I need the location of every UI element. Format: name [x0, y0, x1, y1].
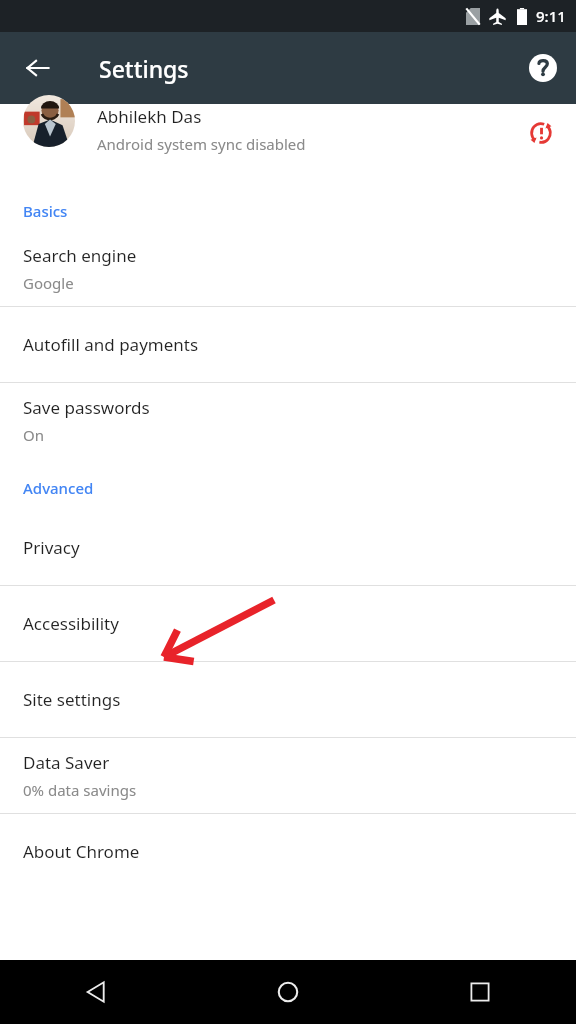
button[interactable]: Privacy	[0, 510, 576, 585]
staticText: About Chrome	[23, 840, 140, 863]
staticText: Autofill and payments	[23, 333, 199, 356]
button[interactable]: About Chrome	[0, 814, 576, 889]
staticText: Data Saver	[23, 751, 110, 774]
button[interactable]: Autofill and payments	[0, 307, 576, 382]
staticText: Google	[23, 273, 74, 293]
button[interactable]: Data Saver	[0, 738, 576, 813]
staticText: Basics	[23, 201, 68, 221]
staticText: Site settings	[23, 688, 121, 711]
staticText: Settings	[99, 53, 189, 84]
staticText: 0% data savings	[23, 780, 137, 800]
button[interactable]: Home	[192, 960, 384, 1024]
button[interactable]: Recent apps	[384, 960, 576, 1024]
staticText: On	[23, 425, 44, 445]
button[interactable]: Accessibility	[0, 586, 576, 661]
button[interactable]: Back	[0, 960, 192, 1024]
button[interactable]: Back	[14, 44, 62, 92]
staticText: Privacy	[23, 536, 80, 559]
staticText: Save passwords	[23, 396, 150, 419]
staticText: Advanced	[23, 478, 94, 498]
staticText: Accessibility	[23, 612, 119, 635]
button[interactable]: Save passwords	[0, 383, 576, 458]
staticText: Search engine	[23, 244, 137, 267]
button[interactable]: Abhilekh Das	[0, 104, 576, 179]
button[interactable]: Help	[519, 44, 567, 92]
staticText: Abhilekh Das	[97, 105, 202, 128]
staticText: 9:11	[536, 6, 566, 26]
staticText: Android system sync disabled	[97, 134, 306, 154]
button[interactable]: Search engine	[0, 231, 576, 306]
button[interactable]: Site settings	[0, 662, 576, 737]
